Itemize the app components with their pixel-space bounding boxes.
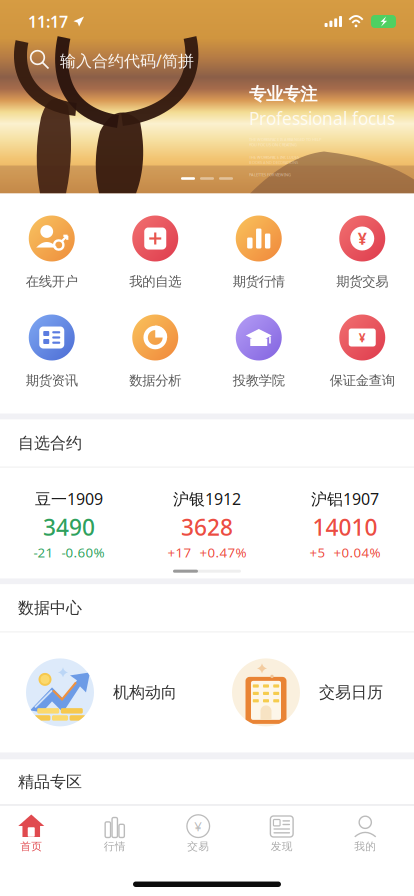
staticText: 精品专区 [18, 772, 82, 792]
staticText: 自选合约 [18, 433, 82, 453]
staticText: 期货资讯 [26, 372, 78, 389]
staticText: 数据中心 [18, 598, 82, 618]
staticText: 我的 [354, 840, 376, 853]
staticText: PALETTES FOR VIEWING [249, 172, 291, 177]
staticText: +0.47% [199, 543, 246, 561]
staticText: 机构动向 [113, 683, 177, 702]
button[interactable]: ¥ [156, 805, 240, 854]
staticText: 保证金查询 [330, 372, 395, 389]
staticText: BOOKS AND DECORATIONS [249, 160, 298, 165]
staticText: -21 [33, 543, 53, 561]
staticText: +0.04% [333, 543, 380, 561]
staticText: 行情 [104, 840, 126, 853]
staticText: 交易 [187, 840, 209, 853]
button[interactable]: 输入合约代码/简拼 [0, 43, 414, 77]
staticText: 沪银1912 [173, 488, 241, 509]
button[interactable]: 期货资讯 [0, 314, 103, 413]
staticText: 期货交易 [336, 273, 388, 290]
staticText: ¥ [359, 329, 366, 345]
staticText: +5 [309, 543, 325, 561]
staticText: 发现 [271, 840, 293, 853]
staticText: 投教学院 [233, 372, 285, 389]
staticText: THE WORKSPACE INCLUDES [249, 154, 299, 160]
button[interactable]: 期货行情 [207, 215, 310, 314]
staticText: 专业专注 [249, 83, 317, 105]
button[interactable]: 我的自选 [103, 215, 207, 314]
button[interactable]: ¥ [310, 215, 414, 314]
staticText: 沪铝1907 [311, 488, 379, 509]
button[interactable]: 豆一1909 [0, 468, 138, 567]
staticText: 交易日历 [319, 683, 383, 702]
button[interactable]: 机构动向 [26, 632, 232, 752]
staticText: 豆一1909 [35, 488, 103, 509]
staticText: 3628 [181, 512, 233, 542]
staticText: Professional focus [249, 107, 395, 130]
staticText: 3490 [43, 512, 95, 542]
staticText: 11:17 [28, 11, 68, 32]
staticText: +17 [167, 543, 191, 561]
button[interactable]: 数据分析 [103, 314, 207, 413]
staticText: YOU FOCUS ON CREATING [249, 142, 297, 147]
staticText: 14010 [312, 512, 377, 542]
staticText: 数据分析 [129, 372, 181, 389]
button[interactable]: 首页 [0, 805, 73, 854]
button[interactable]: 沪铝1907 [276, 468, 414, 567]
button[interactable]: 投教学院 [207, 314, 310, 413]
button[interactable]: 我的 [323, 805, 407, 854]
staticText: 在线开户 [26, 273, 78, 290]
button[interactable]: 在线开户 [0, 215, 103, 314]
staticText: ¥ [194, 817, 202, 835]
button[interactable]: 行情 [73, 805, 156, 854]
button[interactable]: ¥ [310, 314, 414, 413]
staticText: ¥ [358, 228, 367, 249]
button[interactable]: 发现 [240, 805, 323, 854]
button[interactable]: 沪银1912 [138, 468, 276, 567]
button[interactable]: 交易日历 [232, 632, 414, 752]
staticText: THE WORKSPACE IS ARRANGED TO HELP [249, 137, 321, 142]
staticText: 期货行情 [233, 273, 285, 290]
staticText: 输入合约代码/简拼 [60, 50, 194, 71]
staticText: 首页 [20, 840, 42, 853]
staticText: 我的自选 [129, 273, 181, 290]
staticText: -0.60% [61, 543, 104, 561]
